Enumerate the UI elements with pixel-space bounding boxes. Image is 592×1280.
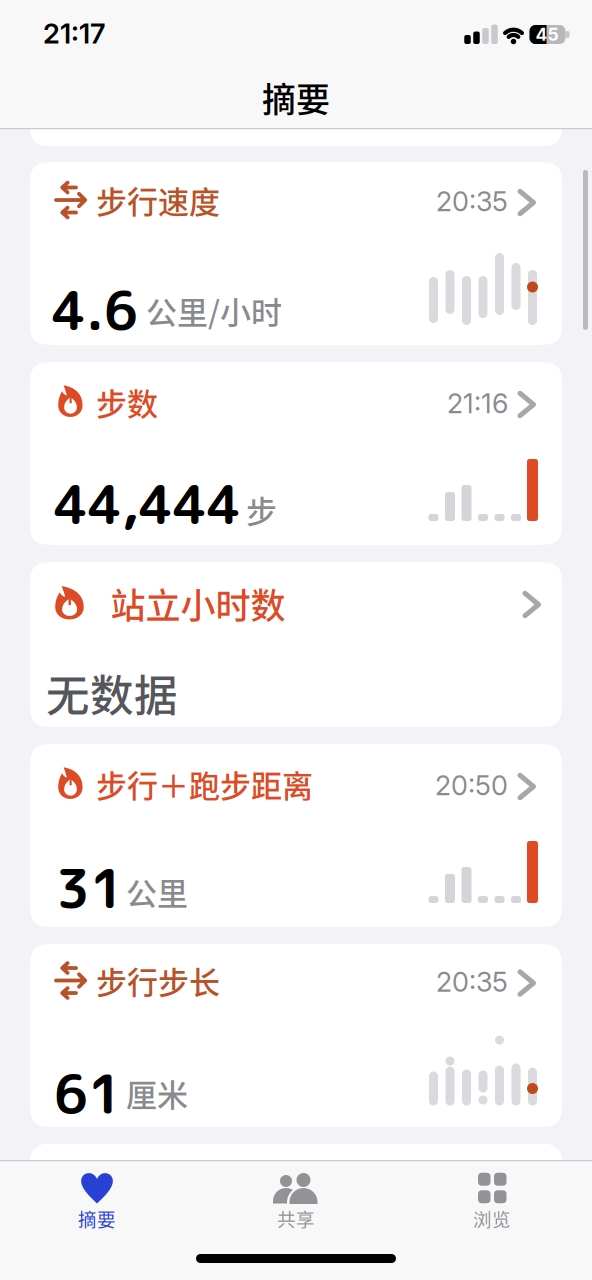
button[interactable]: 步行＋跑步距离 <box>30 744 562 927</box>
staticText: 共享 <box>277 1205 315 1232</box>
staticText: 45 <box>535 24 558 45</box>
staticText: 公里/小时 <box>146 288 282 333</box>
staticText: 厘米 <box>126 1070 188 1115</box>
staticText: 步行速度 <box>96 178 220 222</box>
staticText: 摘要 <box>262 73 330 122</box>
staticText: 摘要 <box>78 1205 116 1232</box>
staticText: 31 <box>56 851 124 925</box>
button[interactable]: 步行速度 <box>30 162 562 345</box>
staticText: 20:35 <box>436 966 508 998</box>
staticText: 21:16 <box>447 387 508 420</box>
staticText: 步数 <box>96 380 158 424</box>
staticText: 4.6 <box>52 273 138 347</box>
staticText: 44,444 <box>54 467 241 541</box>
button[interactable]: 浏览 <box>432 1160 552 1236</box>
button[interactable]: 步数 <box>30 362 562 545</box>
button[interactable]: 步行步长 <box>30 944 562 1127</box>
staticText: 公里 <box>126 869 188 914</box>
button[interactable]: 共享 <box>236 1160 356 1236</box>
staticText: 21:17 <box>43 17 105 50</box>
staticText: 61 <box>54 1056 122 1130</box>
staticText: 20:35 <box>436 185 508 218</box>
staticText: 20:50 <box>435 769 508 802</box>
staticText: 无数据 <box>46 661 178 724</box>
staticText: 步行步长 <box>96 958 220 1003</box>
staticText: 步行＋跑步距离 <box>96 762 313 806</box>
staticText: 步 <box>246 487 277 532</box>
staticText: 站立小时数 <box>110 578 285 629</box>
button[interactable]: 站立小时数 <box>30 562 562 727</box>
button[interactable]: 摘要 <box>37 1160 157 1236</box>
staticText: 浏览 <box>473 1205 511 1232</box>
